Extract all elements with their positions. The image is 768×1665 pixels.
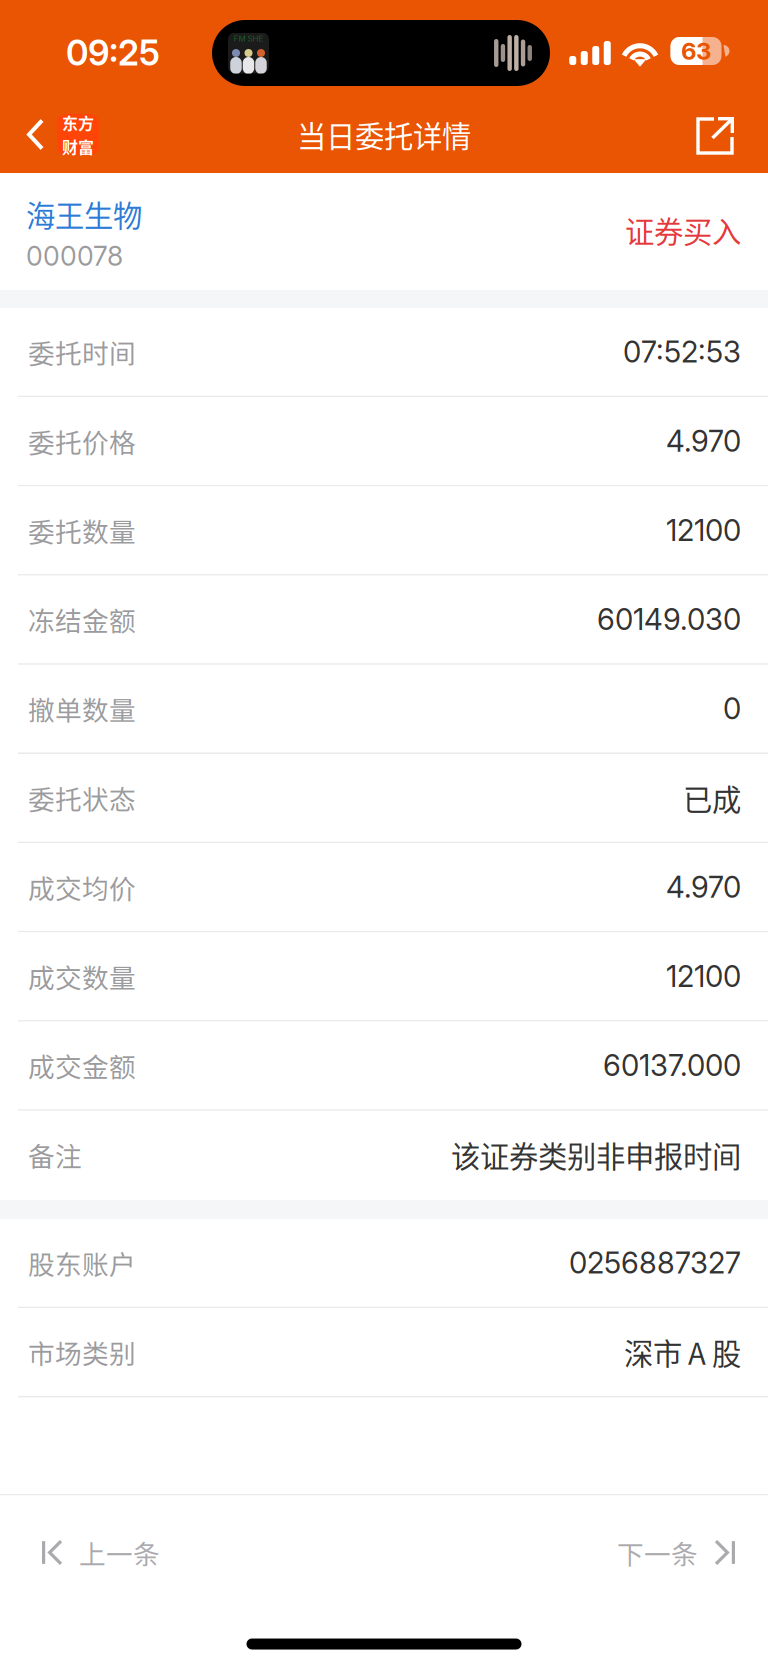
staticText: 撤单数量	[28, 689, 136, 728]
staticText: 备注	[28, 1135, 82, 1174]
staticText: 63	[681, 36, 711, 65]
staticText: 成交金额	[28, 1046, 136, 1085]
staticText: 4.970	[666, 423, 741, 459]
staticText: 12100	[666, 512, 741, 548]
staticText: 09:25	[66, 32, 160, 74]
staticText: 下一条	[617, 1533, 698, 1572]
staticText: 60149.030	[597, 602, 741, 637]
staticText: 股东账户	[28, 1243, 136, 1282]
staticText: 海王生物	[26, 193, 142, 235]
button[interactable]: Share	[672, 96, 768, 173]
staticText: 证券买入	[625, 209, 741, 251]
button[interactable]: 上一条	[0, 1495, 186, 1609]
staticText: 深市 A 股	[624, 1331, 741, 1373]
staticText: 000078	[26, 240, 123, 272]
staticText: 4.970	[666, 869, 741, 905]
staticText: 委托状态	[28, 778, 136, 817]
staticText: 委托数量	[28, 511, 136, 549]
staticText: 东方	[62, 111, 94, 134]
staticText: 12100	[666, 958, 741, 994]
staticText: 该证券类别非申报时间	[451, 1133, 741, 1176]
staticText: 财富	[62, 135, 94, 158]
staticText: 成交均价	[28, 868, 136, 906]
staticText: 上一条	[79, 1533, 160, 1572]
staticText: 冻结金额	[28, 600, 136, 639]
staticText: 已成	[683, 777, 741, 819]
staticText: 当日委托详情	[297, 113, 471, 156]
staticText: 市场类别	[28, 1333, 136, 1371]
staticText: 0256887327	[569, 1245, 741, 1281]
staticText: 60137.000	[603, 1048, 741, 1083]
staticText: FM SHE	[233, 34, 263, 43]
staticText: 委托时间	[28, 332, 136, 371]
staticText: 07:52:53	[623, 334, 741, 370]
staticText: 委托价格	[28, 422, 136, 460]
staticText: 成交数量	[28, 957, 136, 995]
button[interactable]: 下一条	[591, 1495, 768, 1609]
staticText: 0	[723, 691, 741, 726]
button[interactable]: 返回东方财富	[0, 96, 113, 173]
